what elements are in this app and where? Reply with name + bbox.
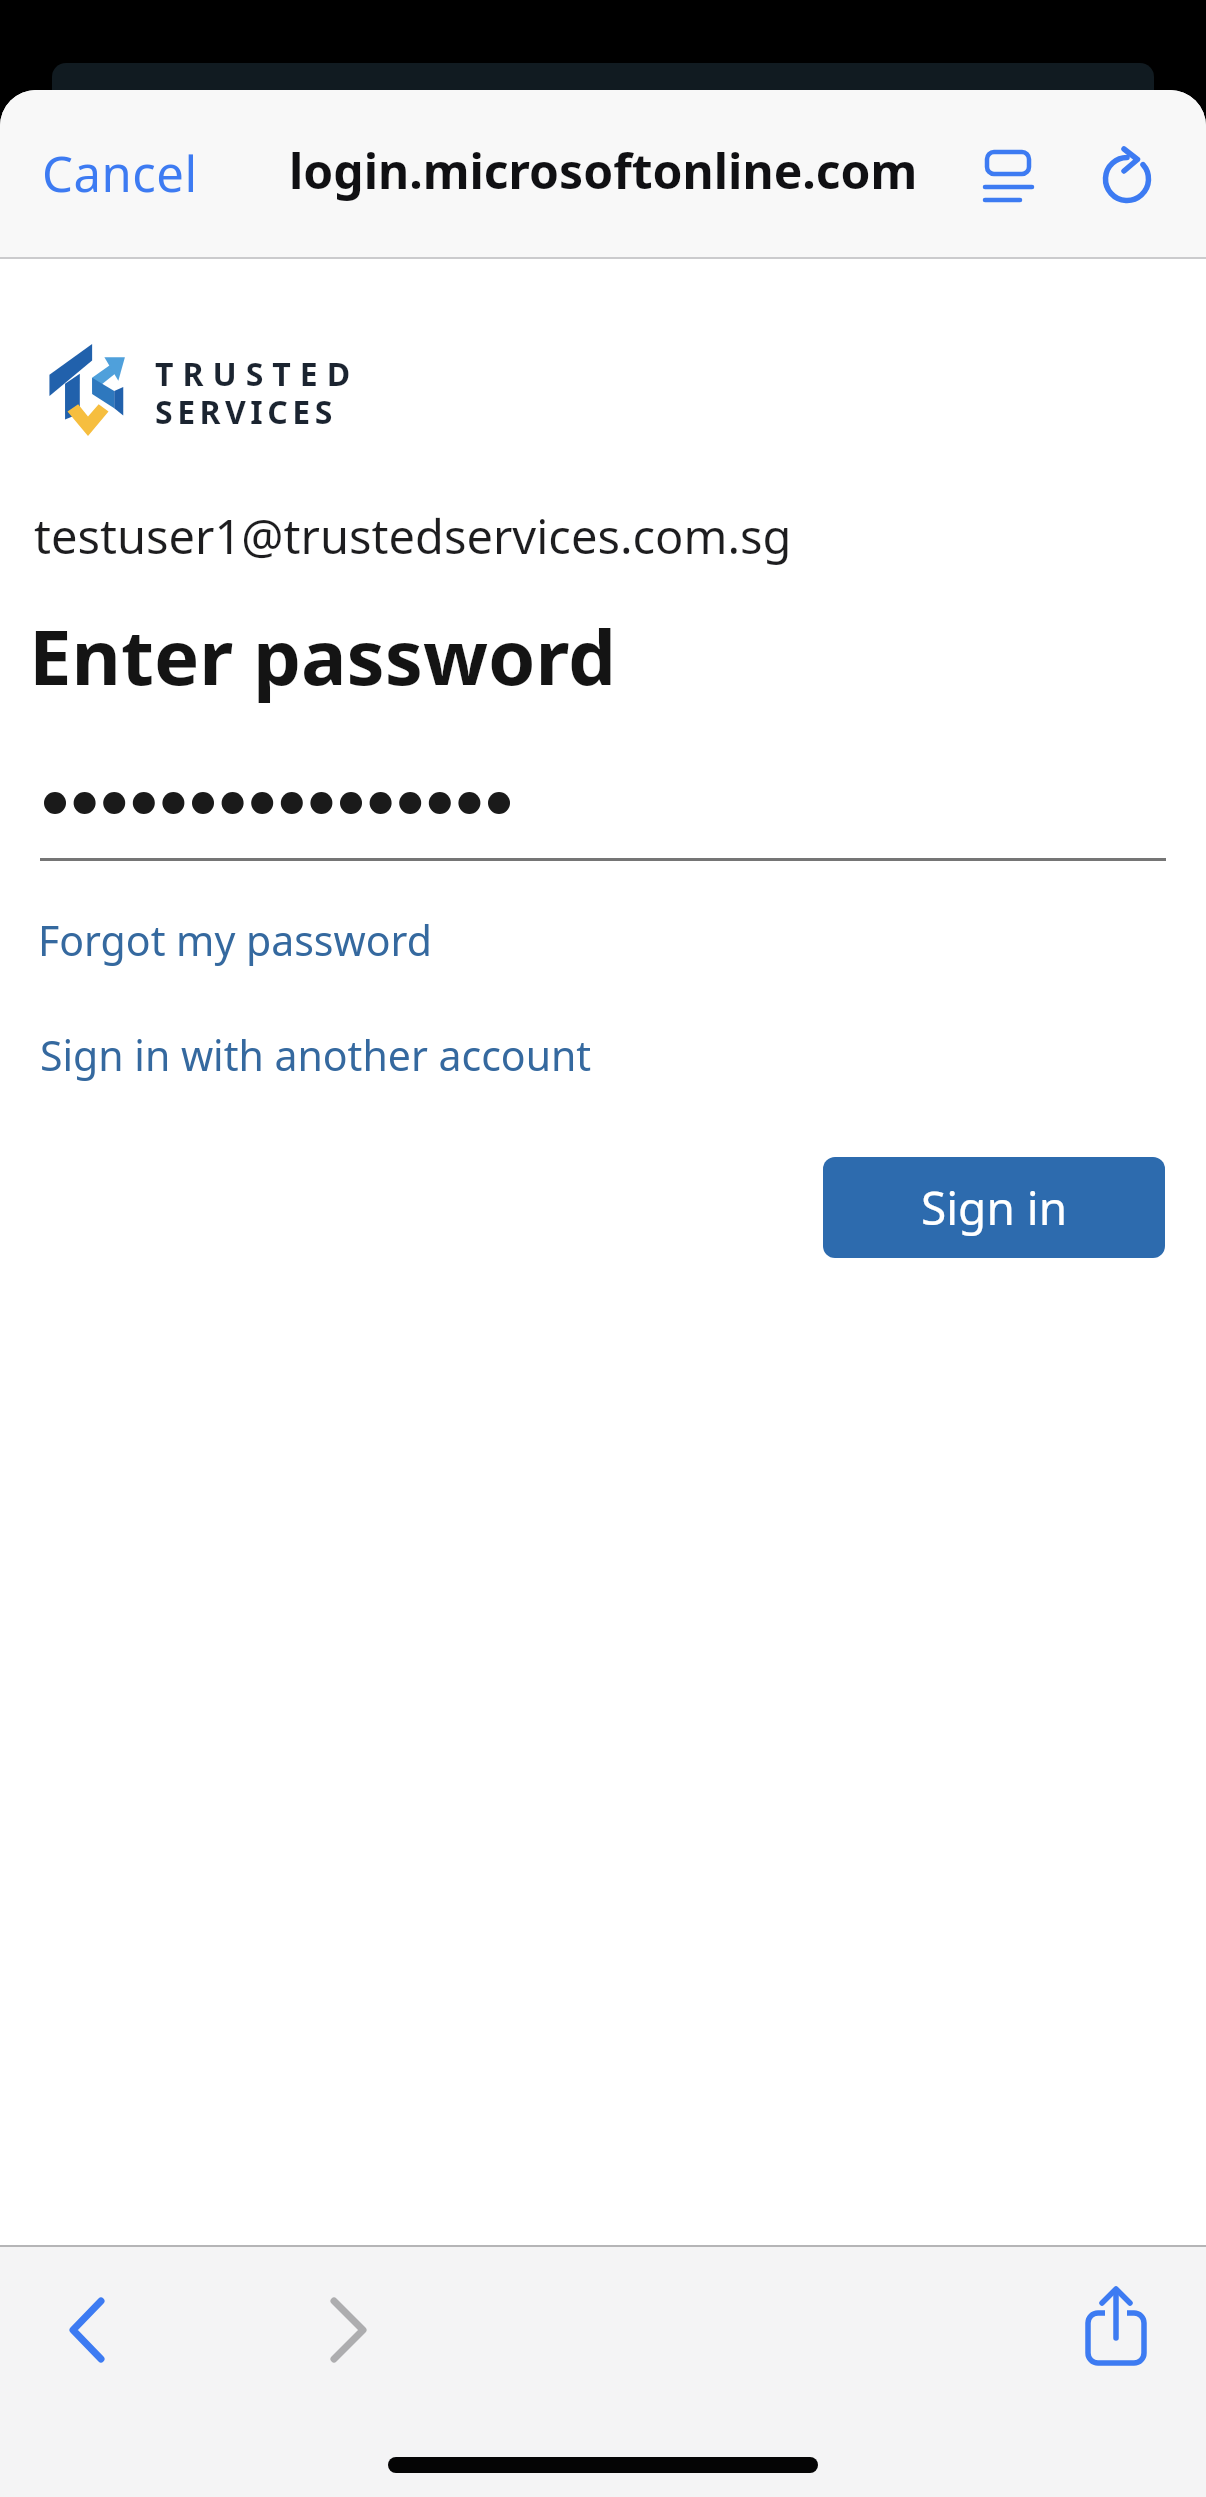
staticText: Sign in bbox=[921, 1176, 1068, 1239]
button[interactable]: Cancel bbox=[28, 128, 218, 218]
staticText: Sign in with another account bbox=[40, 1027, 592, 1083]
button[interactable] bbox=[305, 2286, 395, 2376]
staticText: Enter password bbox=[29, 604, 616, 708]
staticText: Forgot my password bbox=[38, 912, 432, 968]
button[interactable] bbox=[44, 780, 524, 826]
staticText: testuser1@trustedservices.com.sg bbox=[34, 504, 792, 568]
staticText: login.microsoftonline.com bbox=[289, 138, 918, 203]
staticText: TRUSTED bbox=[155, 352, 360, 396]
staticText: SERVICES bbox=[155, 390, 337, 434]
button[interactable] bbox=[1103, 153, 1155, 205]
button[interactable] bbox=[985, 150, 1033, 204]
button[interactable]: Forgot my password bbox=[36, 905, 456, 975]
button[interactable] bbox=[1076, 2280, 1156, 2375]
button[interactable]: Sign in with another account bbox=[38, 1020, 618, 1090]
staticText: Cancel bbox=[42, 140, 198, 207]
button[interactable]: Sign in bbox=[823, 1157, 1165, 1258]
button[interactable] bbox=[56, 2286, 146, 2376]
